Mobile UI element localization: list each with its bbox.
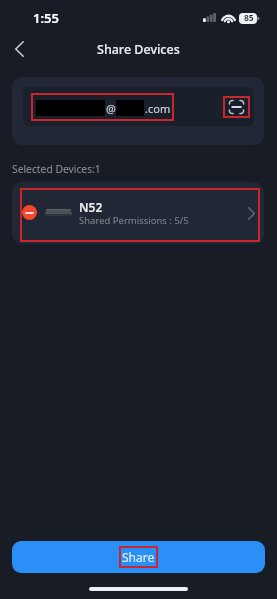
button[interactable]: [12, 182, 264, 244]
staticText: @: [106, 101, 116, 116]
button[interactable]: Remove device: [22, 205, 37, 220]
staticText: Shared Permissions : 5/5: [79, 214, 189, 227]
button[interactable]: Share: [12, 541, 265, 573]
button[interactable]: Email address: [23, 87, 254, 126]
button[interactable]: Back: [2, 32, 36, 66]
button[interactable]: Scan QR code: [223, 96, 250, 118]
staticText: .com: [145, 101, 171, 116]
staticText: Share Devices: [97, 41, 180, 58]
staticText: N52: [79, 199, 103, 215]
staticText: 1:55: [33, 9, 59, 27]
staticText: Share: [122, 549, 155, 565]
button[interactable]: Device details: [242, 202, 260, 224]
staticText: 85: [244, 12, 254, 24]
staticText: Selected Devices:1: [12, 162, 101, 176]
